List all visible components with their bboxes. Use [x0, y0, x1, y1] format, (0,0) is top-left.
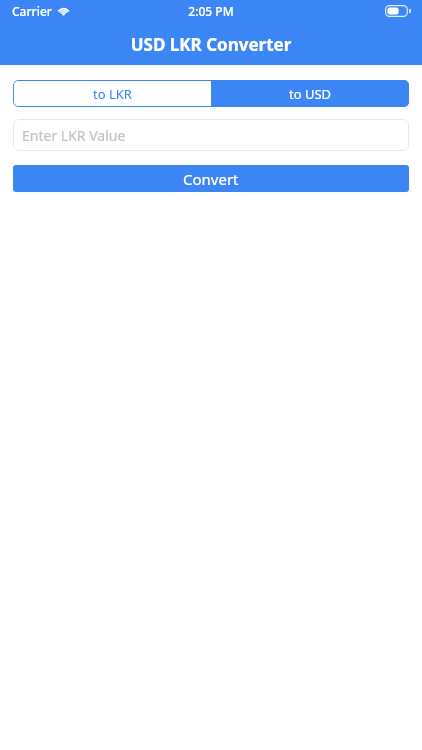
- staticText: Carrier: [12, 3, 52, 19]
- button[interactable]: to USD: [211, 80, 409, 107]
- staticText: to LKR: [93, 85, 132, 103]
- button[interactable]: Convert: [13, 165, 409, 192]
- staticText: to USD: [289, 85, 332, 103]
- staticText: Enter LKR Value: [22, 126, 126, 145]
- staticText: USD LKR Converter: [0, 33, 422, 56]
- button[interactable]: Enter LKR Value: [13, 119, 409, 151]
- button[interactable]: to LKR: [13, 80, 211, 107]
- staticText: 2:05 PM: [0, 3, 422, 19]
- staticText: Convert: [183, 169, 239, 189]
